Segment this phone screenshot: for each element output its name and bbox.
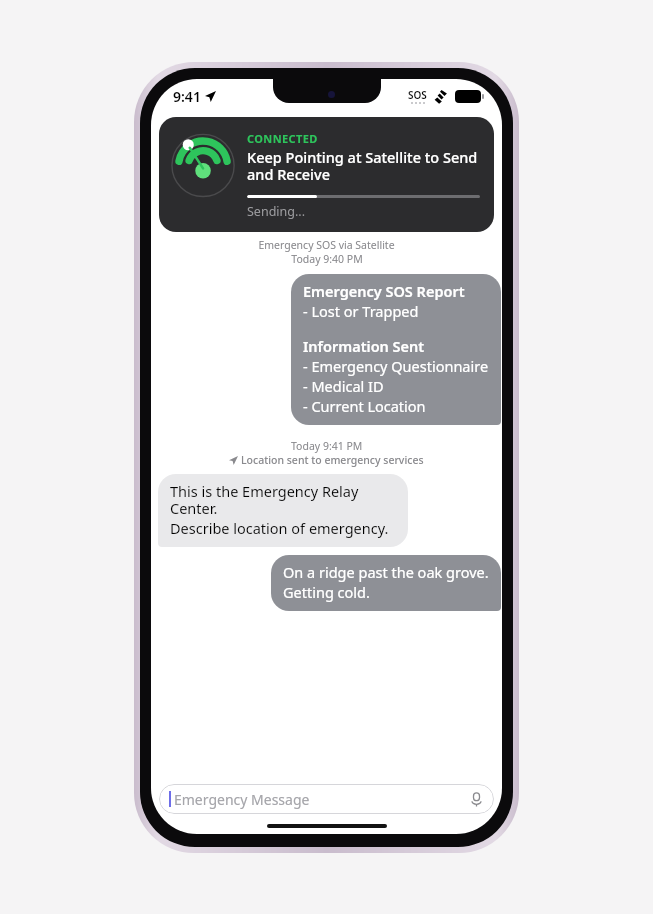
staticText: Keep Pointing at Satellite to Send and R… bbox=[247, 147, 480, 184]
button[interactable]: Emergency Message bbox=[159, 784, 494, 814]
button[interactable]: CONNECTED bbox=[159, 117, 494, 232]
staticText: SOS bbox=[408, 88, 427, 102]
staticText: 9:41 bbox=[173, 87, 201, 106]
button[interactable]: On a ridge past the oak grove. bbox=[271, 555, 501, 611]
staticText: - Emergency Questionnaire bbox=[303, 356, 489, 376]
staticText: On a ridge past the oak grove. bbox=[283, 562, 489, 582]
button[interactable]: Emergency SOS Report bbox=[291, 274, 501, 425]
staticText: Emergency SOS Report bbox=[303, 281, 465, 301]
staticText: Today 9:41 PM bbox=[291, 439, 363, 453]
staticText: This is the Emergency Relay Center. bbox=[170, 481, 396, 518]
staticText: CONNECTED bbox=[247, 131, 318, 146]
staticText: - Current Location bbox=[303, 396, 426, 416]
staticText: Describe location of emergency. bbox=[170, 518, 389, 538]
staticText: Emergency SOS via Satellite bbox=[258, 238, 395, 252]
button[interactable]: This is the Emergency Relay Center. bbox=[158, 474, 408, 547]
staticText: Information Sent bbox=[303, 336, 425, 356]
staticText: Location sent to emergency services bbox=[241, 453, 424, 467]
button[interactable]: Dictate bbox=[466, 789, 486, 809]
staticText: - Lost or Trapped bbox=[303, 301, 419, 321]
staticText: Getting cold. bbox=[283, 582, 370, 602]
staticText: - Medical ID bbox=[303, 376, 384, 396]
staticText: Emergency Message bbox=[174, 790, 310, 809]
staticText: Sending... bbox=[247, 203, 306, 220]
staticText: Today 9:40 PM bbox=[291, 252, 363, 266]
